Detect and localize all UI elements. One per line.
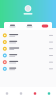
button[interactable]: Search: [14, 87, 28, 100]
button[interactable]: Activity: [28, 87, 42, 100]
button[interactable]: [0, 45, 56, 52]
button[interactable]: [0, 32, 56, 39]
button[interactable]: Home: [0, 87, 14, 100]
button[interactable]: [0, 39, 56, 45]
button[interactable]: [0, 52, 56, 59]
button[interactable]: [0, 59, 56, 65]
button[interactable]: [0, 65, 56, 72]
button[interactable]: Profile: [42, 87, 56, 100]
button[interactable]: [38, 22, 52, 30]
